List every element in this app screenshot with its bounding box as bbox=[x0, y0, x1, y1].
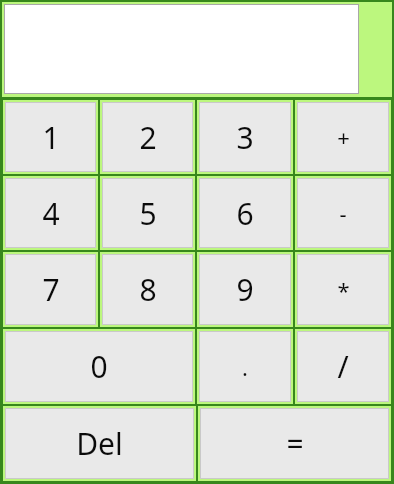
button[interactable]: 8 bbox=[102, 254, 193, 325]
button[interactable]: 1 bbox=[5, 102, 96, 172]
button[interactable]: * bbox=[297, 254, 389, 325]
button[interactable]: Del bbox=[5, 408, 194, 479]
staticText: = bbox=[286, 423, 304, 464]
button[interactable]: Calculator display bbox=[4, 4, 359, 94]
button[interactable]: / bbox=[297, 331, 389, 402]
staticText: 0 bbox=[90, 346, 108, 387]
button[interactable]: 7 bbox=[5, 254, 96, 325]
button[interactable]: 9 bbox=[199, 254, 291, 325]
staticText: / bbox=[337, 346, 349, 387]
button[interactable]: 0 bbox=[5, 331, 193, 402]
staticText: 6 bbox=[236, 193, 254, 234]
button[interactable]: 3 bbox=[199, 102, 291, 172]
button[interactable]: 6 bbox=[199, 178, 291, 248]
staticText: + bbox=[337, 122, 350, 152]
button[interactable]: = bbox=[200, 408, 389, 479]
staticText: 8 bbox=[139, 269, 157, 310]
staticText: 4 bbox=[42, 193, 60, 234]
staticText: Del bbox=[76, 423, 123, 464]
button[interactable]: 4 bbox=[5, 178, 96, 248]
button[interactable]: - bbox=[297, 178, 389, 248]
staticText: 9 bbox=[236, 269, 254, 310]
staticText: 7 bbox=[42, 269, 60, 310]
button[interactable]: 2 bbox=[102, 102, 193, 172]
staticText: - bbox=[339, 198, 347, 228]
button[interactable]: + bbox=[297, 102, 389, 172]
staticText: * bbox=[337, 275, 350, 305]
staticText: 5 bbox=[139, 193, 157, 234]
staticText: 3 bbox=[236, 117, 254, 158]
staticText: 1 bbox=[42, 117, 60, 158]
button[interactable]: 5 bbox=[102, 178, 193, 248]
staticText: . bbox=[242, 352, 248, 382]
staticText: 2 bbox=[139, 117, 157, 158]
button[interactable]: . bbox=[199, 331, 291, 402]
